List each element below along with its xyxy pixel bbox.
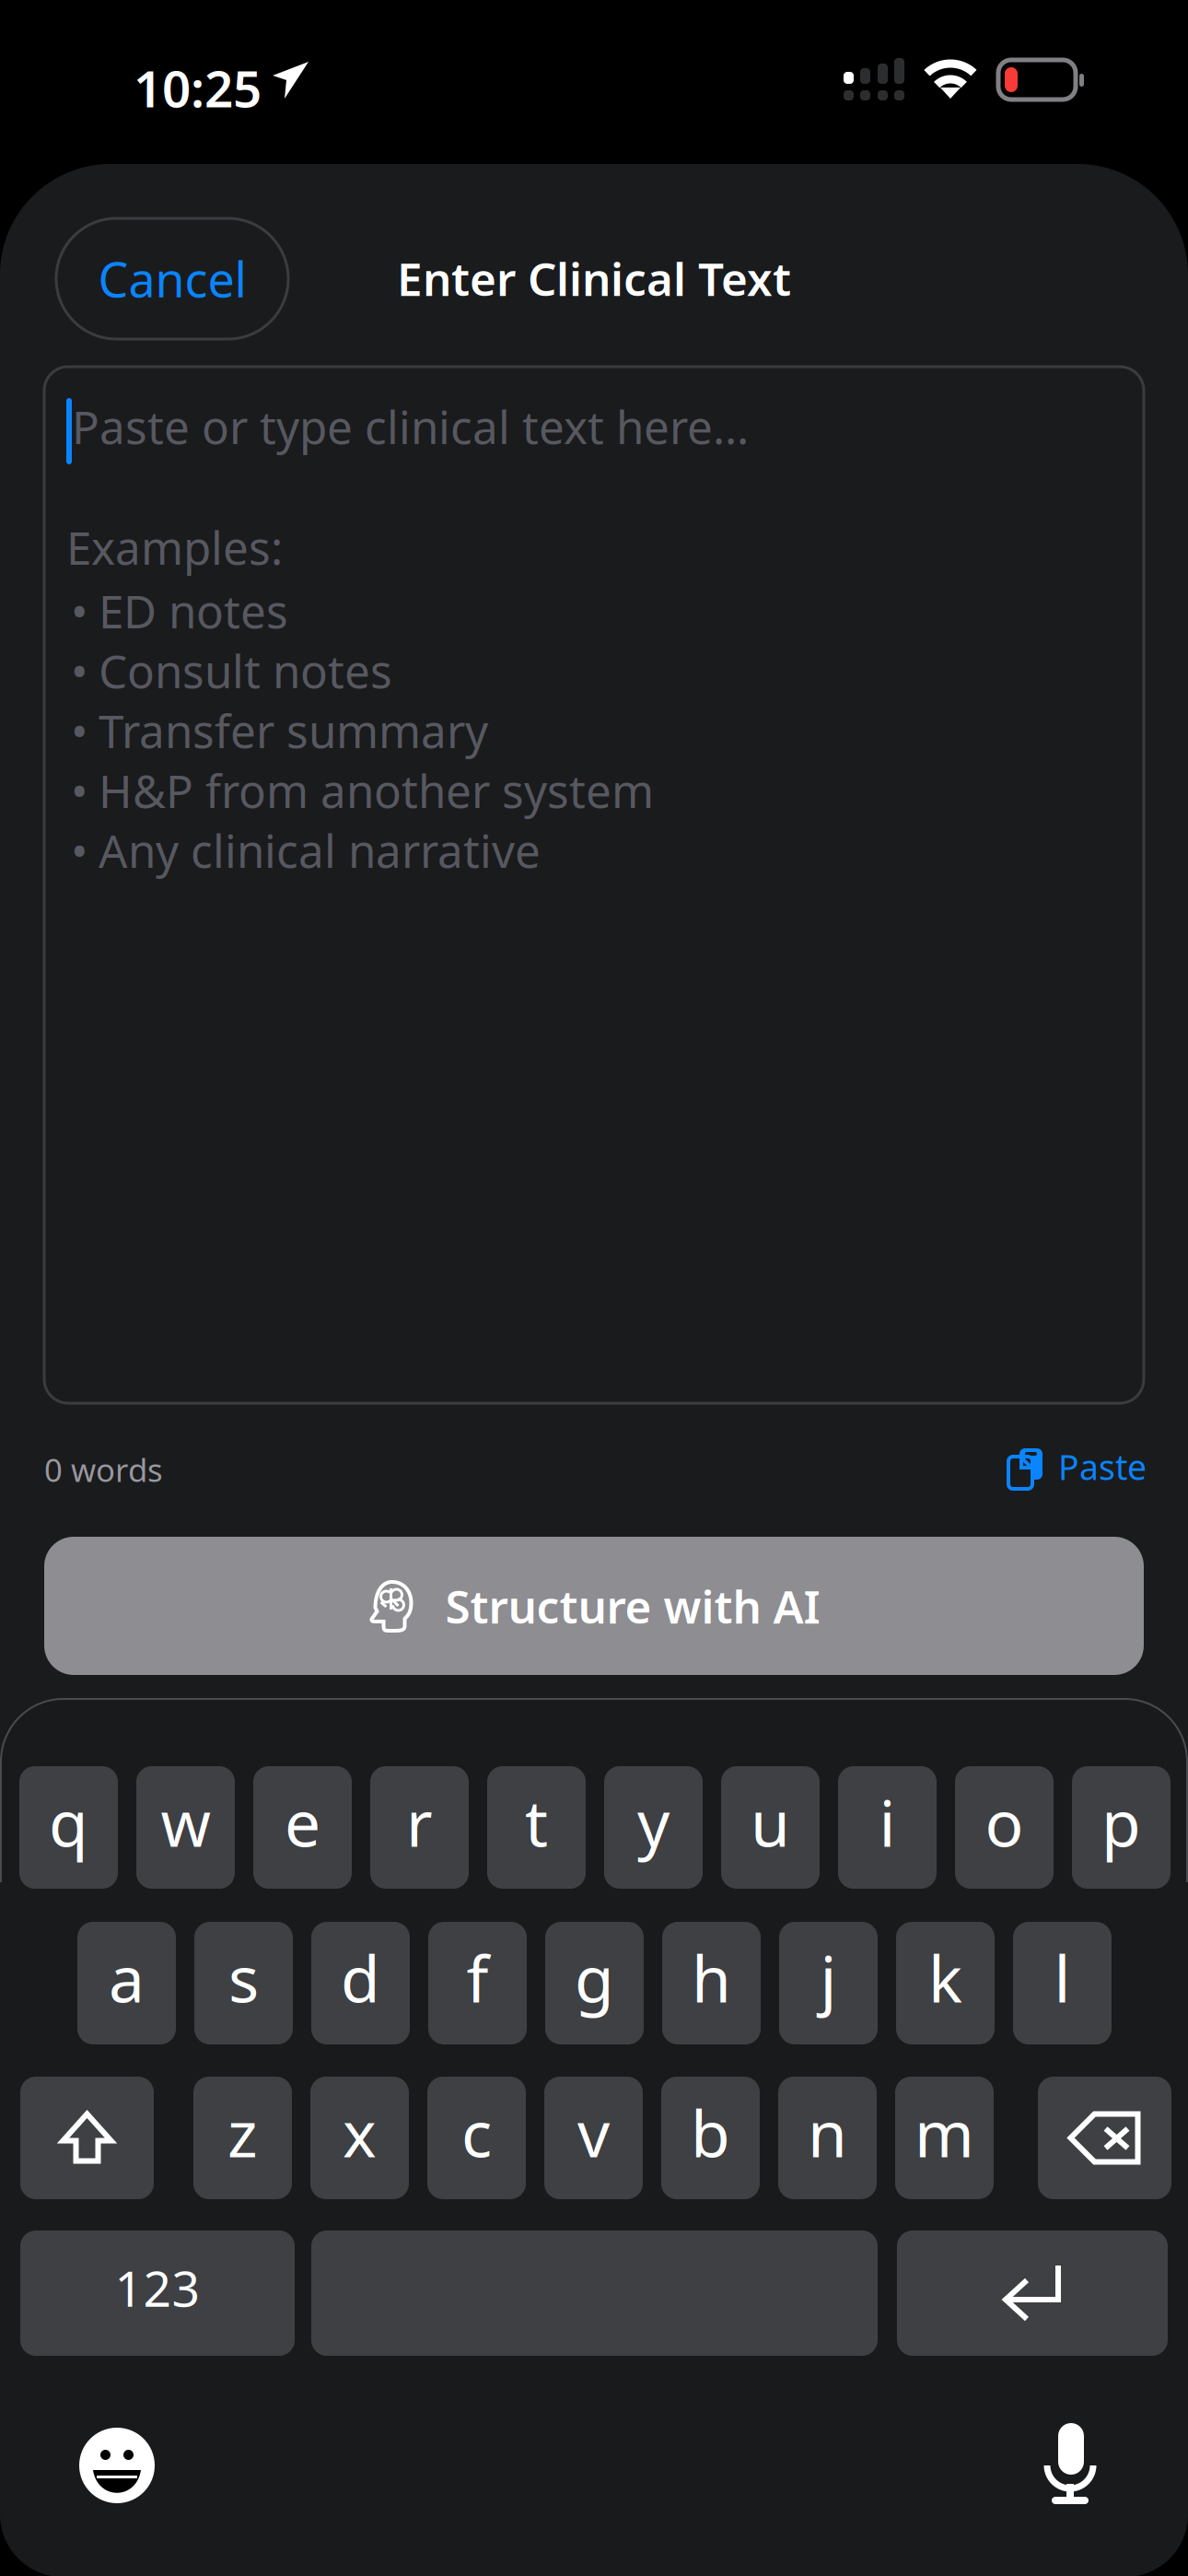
staticText: Paste [1058, 1444, 1147, 1490]
button[interactable]: Return [897, 2231, 1168, 2356]
staticText: Consult notes [99, 640, 392, 701]
button[interactable]: Structure with AI [44, 1537, 1144, 1675]
staticText: i [879, 1780, 896, 1864]
button[interactable]: Shift [20, 2077, 154, 2199]
staticText: a [109, 1935, 145, 2020]
staticText: c [461, 2090, 492, 2175]
button[interactable]: s [194, 1922, 293, 2044]
button[interactable]: c [427, 2077, 526, 2199]
staticText: u [751, 1780, 790, 1864]
staticText: r [406, 1780, 433, 1864]
staticText: q [49, 1780, 88, 1864]
staticText: p [1101, 1780, 1141, 1864]
button[interactable]: Delete [1038, 2077, 1171, 2199]
staticText: v [577, 2090, 610, 2175]
staticText: m [914, 2090, 974, 2175]
staticText: • [71, 760, 88, 820]
staticText: f [466, 1935, 489, 2020]
staticText: s [228, 1935, 259, 2020]
button[interactable]: 123 [20, 2231, 295, 2356]
button[interactable]: j [779, 1922, 878, 2044]
button[interactable]: x [310, 2077, 409, 2199]
button[interactable]: Dictate [1043, 2423, 1097, 2504]
button[interactable]: i [838, 1766, 937, 1889]
staticText: Paste or type clinical text here... [72, 396, 749, 457]
staticText: • [71, 640, 88, 701]
staticText: • [71, 580, 88, 641]
staticText: j [820, 1935, 837, 2020]
button[interactable]: t [487, 1766, 586, 1889]
staticText: k [928, 1935, 962, 2020]
button[interactable]: b [661, 2077, 760, 2199]
button[interactable]: r [370, 1766, 469, 1889]
button[interactable]: f [428, 1922, 527, 2044]
button[interactable]: o [955, 1766, 1054, 1889]
staticText: z [227, 2090, 258, 2175]
staticText: • [71, 820, 88, 880]
button[interactable]: w [136, 1766, 235, 1889]
staticText: y [637, 1780, 670, 1864]
button[interactable]: Paste [1008, 1448, 1147, 1489]
staticText: 123 [115, 2255, 200, 2320]
button[interactable]: a [77, 1922, 176, 2044]
staticText: • [71, 700, 88, 761]
button[interactable]: Cancel [56, 218, 288, 339]
staticText: o [985, 1780, 1024, 1864]
staticText: Examples: [66, 517, 283, 577]
button[interactable]: Emoji [79, 2428, 155, 2503]
button[interactable]: v [544, 2077, 643, 2199]
button[interactable]: q [19, 1766, 118, 1889]
staticText: l [1054, 1935, 1071, 2020]
staticText: t [525, 1780, 548, 1864]
button[interactable]: k [896, 1922, 995, 2044]
button[interactable]: e [253, 1766, 352, 1889]
staticText: 10:25 [134, 54, 262, 121]
staticText: Any clinical narrative [99, 820, 541, 880]
staticText: w [161, 1780, 210, 1864]
staticText: Cancel [98, 247, 246, 311]
button[interactable]: g [545, 1922, 644, 2044]
button[interactable]: m [895, 2077, 994, 2199]
button[interactable]: d [311, 1922, 410, 2044]
button[interactable]: y [604, 1766, 703, 1889]
staticText: b [691, 2090, 730, 2175]
staticText: H&P from another system [99, 760, 654, 820]
staticText: Transfer summary [99, 700, 488, 761]
staticText: g [575, 1935, 614, 2020]
staticText: e [285, 1780, 320, 1864]
staticText: d [341, 1935, 380, 2020]
staticText: Enter Clinical Text [397, 248, 791, 308]
staticText: Structure with AI [445, 1576, 820, 1636]
button[interactable]: n [778, 2077, 877, 2199]
button[interactable]: l [1013, 1922, 1112, 2044]
staticText: x [343, 2090, 377, 2175]
button[interactable]: p [1072, 1766, 1171, 1889]
staticText: 0 words [44, 1448, 163, 1491]
staticText: ED notes [99, 580, 288, 641]
button[interactable]: h [662, 1922, 761, 2044]
button[interactable]: u [721, 1766, 820, 1889]
button[interactable]: z [193, 2077, 292, 2199]
staticText: h [692, 1935, 731, 2020]
staticText: n [808, 2090, 847, 2175]
